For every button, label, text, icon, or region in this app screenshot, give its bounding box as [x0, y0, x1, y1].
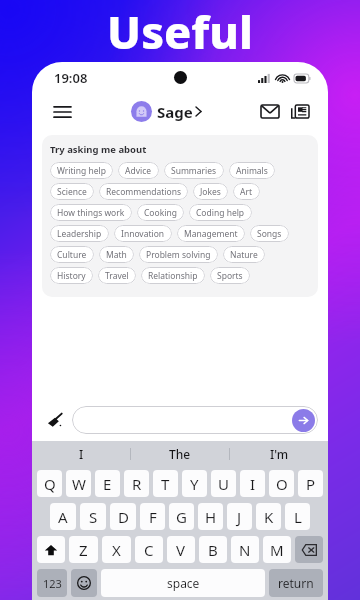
button[interactable]: Emoji — [71, 569, 97, 597]
staticText: E — [103, 474, 112, 494]
staticText: Sports — [217, 270, 243, 282]
staticText: Innovation — [121, 228, 165, 240]
button[interactable]: E — [95, 470, 120, 497]
button[interactable]: H — [198, 503, 223, 530]
staticText: D — [118, 507, 129, 527]
button[interactable]: Sports — [210, 267, 250, 284]
button[interactable]: L — [285, 503, 310, 530]
staticText: U — [218, 474, 229, 494]
button[interactable]: O — [269, 470, 294, 497]
staticText: B — [208, 540, 218, 560]
button[interactable]: Science — [50, 183, 94, 200]
button[interactable]: I'm — [230, 441, 328, 467]
button[interactable]: G — [169, 503, 194, 530]
button[interactable] — [72, 406, 318, 434]
button[interactable]: V — [167, 536, 195, 563]
button[interactable]: History — [50, 267, 93, 284]
button[interactable]: Sage — [131, 101, 201, 122]
button[interactable]: Leadership — [50, 225, 109, 242]
button[interactable]: F — [140, 503, 165, 530]
staticText: S — [89, 507, 98, 527]
button[interactable]: space — [101, 569, 265, 597]
button[interactable]: Relationship — [141, 267, 205, 284]
staticText: T — [161, 474, 170, 494]
staticText: H — [205, 507, 217, 527]
staticText: Management — [184, 228, 238, 240]
button[interactable]: Menu — [47, 97, 77, 127]
button[interactable]: The — [131, 441, 229, 467]
button[interactable]: Jokes — [193, 183, 228, 200]
staticText: Sage — [157, 102, 193, 122]
button[interactable]: T — [153, 470, 178, 497]
staticText: space — [167, 575, 200, 591]
button[interactable]: Management — [177, 225, 245, 242]
button[interactable]: Recommendations — [99, 183, 188, 200]
button[interactable]: Q — [37, 470, 62, 497]
button[interactable]: Songs — [250, 225, 289, 242]
button[interactable]: 123 — [37, 569, 67, 597]
staticText: Animals — [236, 165, 268, 177]
button[interactable]: Art — [233, 183, 260, 200]
button[interactable]: J — [227, 503, 252, 530]
button[interactable]: Cooking — [137, 204, 184, 221]
button[interactable]: Travel — [98, 267, 136, 284]
button[interactable]: Animals — [229, 162, 275, 179]
button[interactable]: Messages — [256, 98, 283, 125]
button[interactable]: Send — [292, 409, 315, 432]
button[interactable]: I — [240, 470, 265, 497]
staticText: The — [169, 446, 191, 462]
button[interactable]: Clear chat — [42, 407, 68, 433]
staticText: Leadership — [57, 228, 102, 240]
staticText: Y — [190, 474, 199, 494]
staticText: R — [132, 474, 142, 494]
button[interactable]: Innovation — [114, 225, 172, 242]
button[interactable]: P — [298, 470, 323, 497]
button[interactable]: U — [211, 470, 236, 497]
staticText: Jokes — [200, 186, 221, 198]
button[interactable]: M — [263, 536, 291, 563]
staticText: I — [250, 474, 256, 494]
staticText: 123 — [43, 576, 62, 591]
button[interactable]: B — [199, 536, 227, 563]
staticText: X — [112, 540, 121, 560]
staticText: Songs — [257, 228, 282, 240]
staticText: Writing help — [57, 165, 106, 177]
button[interactable]: return — [269, 569, 323, 597]
staticText: Relationship — [148, 270, 198, 282]
staticText: Problem solving — [146, 249, 211, 261]
button[interactable]: K — [256, 503, 281, 530]
staticText: Useful — [0, 1, 360, 62]
staticText: Summaries — [171, 165, 217, 177]
button[interactable]: Advice — [118, 162, 159, 179]
button[interactable]: Backspace — [295, 536, 323, 563]
staticText: V — [176, 540, 186, 560]
button[interactable]: Z — [69, 536, 98, 563]
button[interactable]: A — [50, 503, 76, 530]
button[interactable]: Nature — [223, 246, 265, 263]
staticText: How things work — [57, 207, 125, 219]
button[interactable]: How things work — [50, 204, 132, 221]
button[interactable]: W — [66, 470, 91, 497]
button[interactable]: R — [124, 470, 149, 497]
button[interactable]: X — [102, 536, 131, 563]
button[interactable]: N — [231, 536, 259, 563]
staticText: J — [237, 507, 242, 527]
button[interactable]: C — [135, 536, 163, 563]
button[interactable]: I — [32, 441, 130, 467]
staticText: Cooking — [144, 207, 177, 219]
button[interactable]: Y — [182, 470, 207, 497]
button[interactable]: Summaries — [164, 162, 224, 179]
button[interactable]: D — [110, 503, 136, 530]
button[interactable]: Writing help — [50, 162, 113, 179]
button[interactable]: S — [80, 503, 106, 530]
staticText: Science — [57, 186, 87, 198]
button[interactable]: Problem solving — [139, 246, 218, 263]
button[interactable]: Coding help — [189, 204, 252, 221]
staticText: Coding help — [196, 207, 245, 219]
button[interactable]: Math — [99, 246, 134, 263]
button[interactable]: News — [286, 98, 313, 125]
button[interactable]: Shift — [37, 536, 65, 563]
button[interactable]: Culture — [50, 246, 94, 263]
staticText: F — [149, 507, 157, 527]
staticText: W — [72, 474, 86, 494]
